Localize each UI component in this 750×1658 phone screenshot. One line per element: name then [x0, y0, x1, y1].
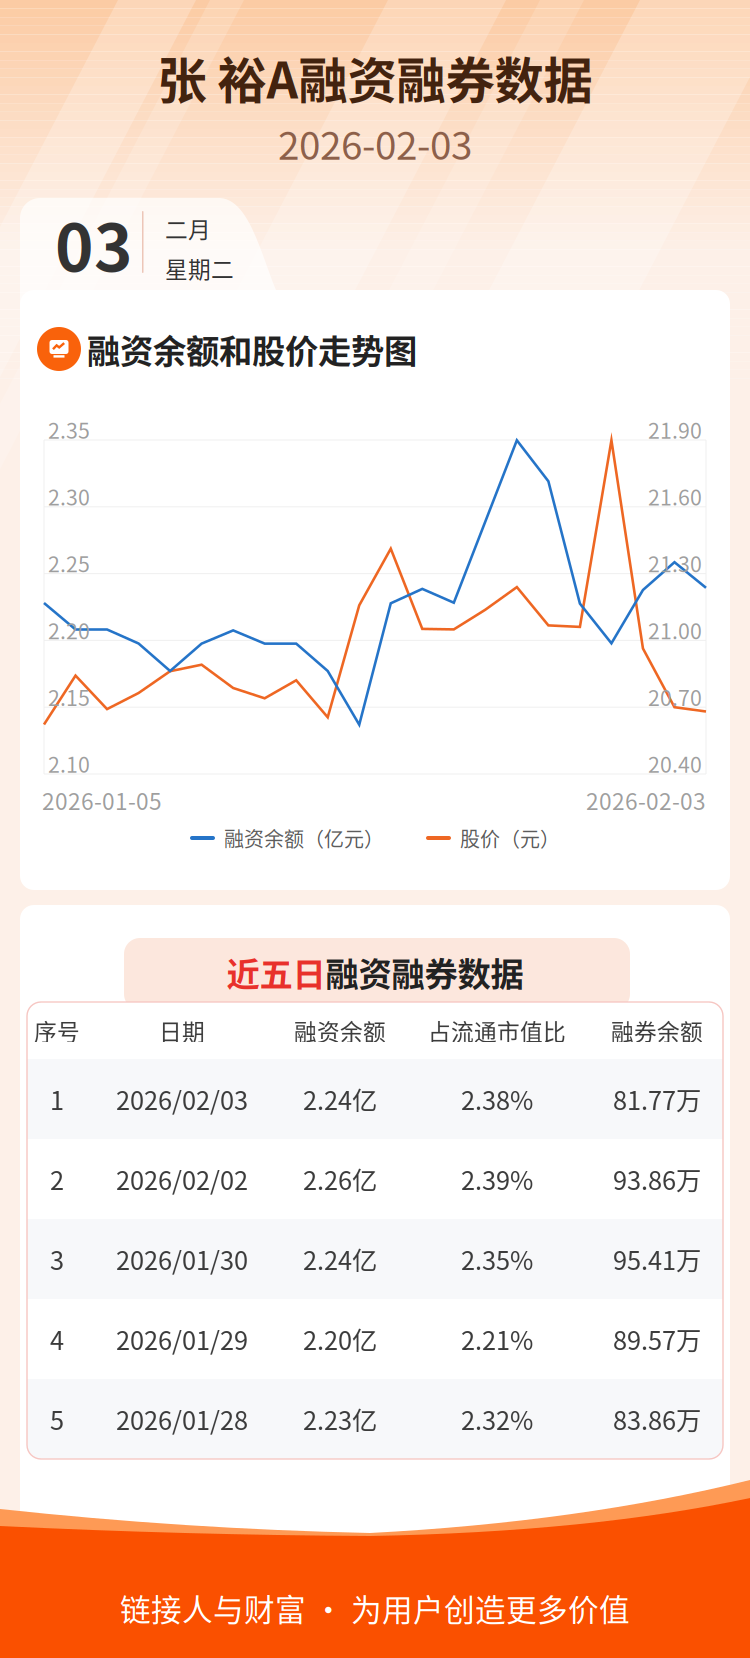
staticText: 2.30: [48, 481, 90, 512]
staticText: 2026/02/03: [116, 1081, 248, 1117]
staticText: 星期二: [165, 252, 234, 285]
staticText: 序号: [34, 1014, 80, 1047]
staticText: 2.23亿: [303, 1401, 377, 1437]
staticText: 2.39%: [461, 1161, 533, 1197]
staticText: 21.90: [648, 414, 702, 445]
staticText: 2.35: [48, 414, 90, 445]
staticText: 1: [50, 1081, 64, 1117]
staticText: 2026/01/28: [116, 1401, 248, 1437]
staticText: 融资余额（亿元）: [224, 823, 384, 852]
staticText: 2.25: [48, 548, 90, 578]
staticText: 03: [55, 196, 133, 290]
staticText: 链接人与财富 · 为用户创造更多价值: [120, 1586, 630, 1630]
staticText: 融资余额: [294, 1014, 386, 1047]
staticText: 2.32%: [461, 1401, 533, 1437]
staticText: 2.24亿: [303, 1081, 377, 1117]
staticText: 2.20亿: [303, 1321, 377, 1357]
staticText: 占流通市值比: [428, 1014, 566, 1047]
staticText: 2026-01-05: [42, 784, 162, 816]
staticText: 股价（元）: [460, 823, 560, 852]
staticText: 2.38%: [461, 1081, 533, 1117]
staticText: 2.15: [48, 681, 90, 712]
staticText: 二月: [165, 212, 211, 245]
staticText: 2026-02-03: [586, 784, 706, 816]
staticText: 4: [50, 1321, 64, 1357]
staticText: 2026/02/02: [116, 1161, 248, 1197]
staticText: 融券余额: [611, 1014, 703, 1047]
staticText: 2: [50, 1161, 64, 1197]
staticText: 融资余额和股价走势图: [87, 325, 417, 373]
staticText: 20.40: [648, 748, 702, 779]
staticText: 21.30: [648, 548, 702, 578]
staticText: 2026-02-03: [278, 115, 472, 171]
staticText: 89.57万: [613, 1321, 701, 1357]
staticText: 近五日: [226, 948, 325, 996]
staticText: 21.60: [648, 481, 702, 512]
staticText: 20.70: [648, 681, 702, 712]
staticText: 2.21%: [461, 1321, 533, 1357]
staticText: 83.86万: [613, 1401, 701, 1437]
staticText: 日期: [159, 1014, 205, 1047]
staticText: 95.41万: [613, 1241, 701, 1277]
staticText: 93.86万: [613, 1161, 701, 1197]
staticText: 2.10: [48, 748, 90, 779]
staticText: 2.20: [48, 614, 90, 645]
staticText: 融资融券数据: [325, 948, 523, 996]
staticText: 2.35%: [461, 1241, 533, 1277]
staticText: 81.77万: [613, 1081, 701, 1117]
staticText: 5: [50, 1401, 64, 1437]
staticText: 3: [50, 1241, 64, 1277]
staticText: 2.26亿: [303, 1161, 377, 1197]
staticText: 2026/01/29: [116, 1321, 248, 1357]
staticText: 2026/01/30: [116, 1241, 248, 1277]
staticText: 2.24亿: [303, 1241, 377, 1277]
staticText: 21.00: [648, 614, 702, 645]
staticText: 张 裕A融资融券数据: [157, 41, 592, 113]
